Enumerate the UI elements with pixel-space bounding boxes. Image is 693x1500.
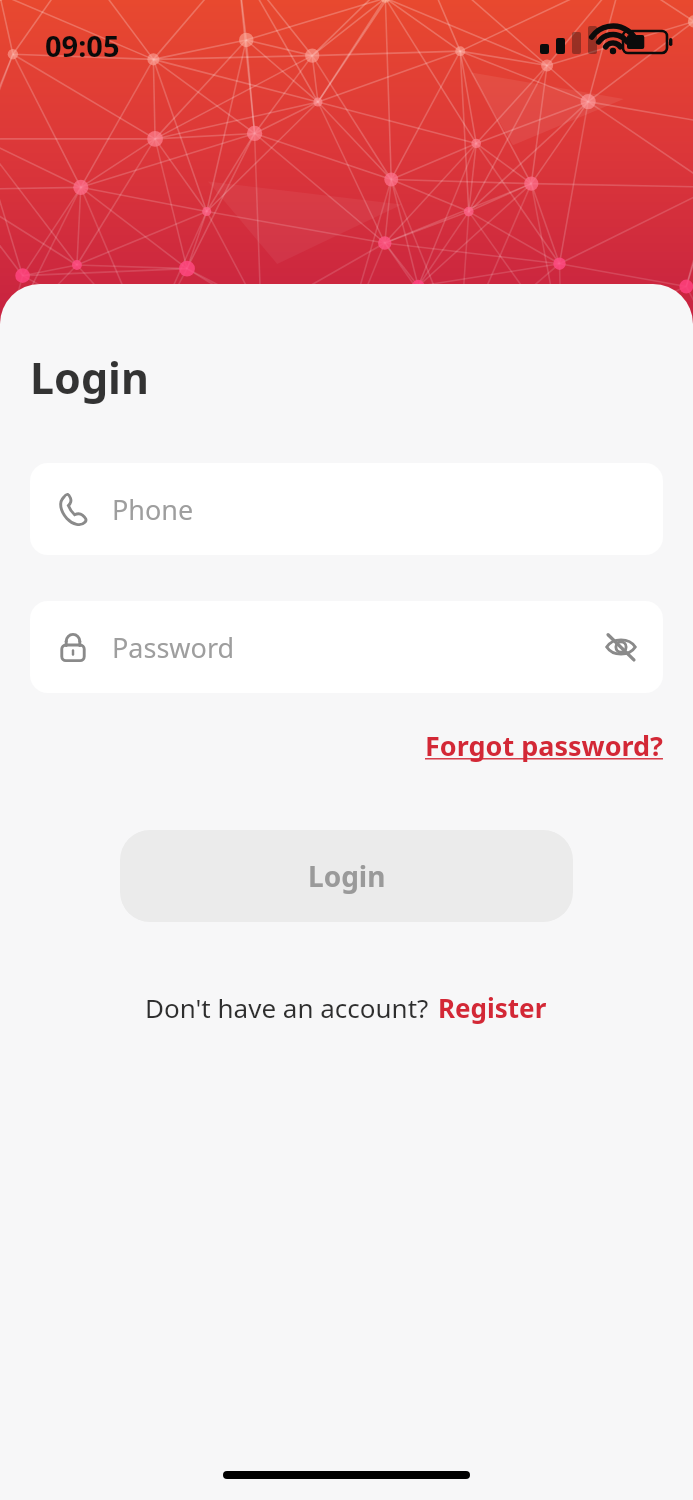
staticText: Register: [438, 990, 547, 1025]
button[interactable]: Register: [436, 988, 549, 1027]
button[interactable]: Forgot password?: [421, 723, 667, 768]
button[interactable]: Password: [30, 601, 663, 693]
button[interactable]: Show password: [597, 623, 645, 671]
button[interactable]: Login: [120, 830, 573, 922]
staticText: Forgot password?: [425, 727, 663, 764]
staticText: 09:05: [45, 26, 120, 65]
staticText: Login: [30, 348, 149, 407]
staticText: Don't have an account?: [145, 990, 436, 1025]
staticText: Login: [308, 857, 386, 895]
staticText: Phone: [112, 491, 194, 528]
button[interactable]: Phone: [30, 463, 663, 555]
staticText: Password: [112, 629, 235, 666]
